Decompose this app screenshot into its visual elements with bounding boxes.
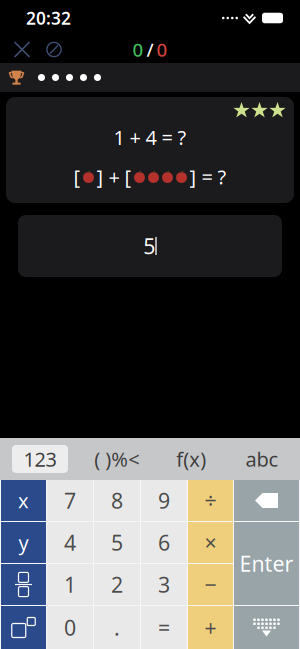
button[interactable]: x — [1, 480, 46, 521]
button[interactable]: ÷ — [188, 480, 233, 521]
staticText: + — [204, 613, 216, 642]
staticText: 1 + 4 = ? — [113, 124, 186, 151]
staticText: / — [146, 37, 153, 62]
button[interactable]: f(x) — [165, 445, 217, 473]
staticText: x — [18, 487, 29, 514]
staticText: 0 — [64, 613, 76, 642]
staticText: − — [204, 570, 216, 599]
button[interactable]: Delete — [234, 480, 299, 521]
staticText: f(x) — [176, 446, 206, 472]
staticText: 0 — [132, 37, 143, 62]
button[interactable]: 5 — [18, 215, 282, 277]
button[interactable]: 123 — [12, 445, 68, 473]
button[interactable]: y — [1, 522, 46, 563]
button[interactable]: × — [188, 522, 233, 563]
button[interactable]: Close — [7, 36, 37, 62]
button[interactable]: ( )%< — [87, 445, 147, 473]
button[interactable]: Enter — [234, 522, 299, 605]
button[interactable]: 6 — [141, 522, 187, 563]
button[interactable]: 9 — [141, 480, 187, 521]
staticText: 2 — [111, 570, 123, 599]
staticText: 5 — [111, 528, 123, 557]
button[interactable]: 2 — [94, 564, 140, 605]
button[interactable]: Hide keyboard — [234, 606, 299, 649]
staticText: 8 — [111, 486, 123, 515]
staticText: = — [158, 613, 170, 642]
button[interactable]: + — [188, 606, 233, 649]
button[interactable]: 0 — [47, 606, 93, 649]
button[interactable]: 3 — [141, 564, 187, 605]
button[interactable]: = — [141, 606, 187, 649]
staticText: × — [204, 528, 216, 557]
staticText: 5 — [143, 232, 155, 260]
staticText: y — [18, 529, 28, 556]
staticText: 4 — [64, 528, 76, 557]
button[interactable]: − — [188, 564, 233, 605]
button[interactable]: 7 — [47, 480, 93, 521]
button[interactable]: Exponent — [1, 606, 46, 649]
button[interactable]: 8 — [94, 480, 140, 521]
staticText: ÷ — [204, 486, 216, 515]
staticText: 6 — [158, 528, 170, 557]
staticText: 0 — [156, 37, 167, 62]
staticText: ( )%< — [94, 446, 139, 472]
staticText: ] = ? — [189, 164, 226, 190]
button[interactable]: abc — [236, 445, 288, 473]
button[interactable]: Fraction — [1, 564, 46, 605]
staticText: 123 — [23, 446, 56, 472]
button[interactable]: 4 — [47, 522, 93, 563]
staticText: Enter — [239, 549, 293, 578]
staticText: 1 — [64, 570, 76, 599]
staticText: 7 — [64, 486, 76, 515]
button[interactable]: 5 — [94, 522, 140, 563]
staticText: 9 — [158, 486, 170, 515]
staticText: abc — [245, 446, 278, 472]
button[interactable]: Skip question — [37, 36, 71, 62]
staticText: . — [114, 613, 120, 642]
staticText: 20:32 — [26, 6, 71, 29]
button[interactable]: . — [94, 606, 140, 649]
staticText: 3 — [158, 570, 170, 599]
staticText: ] + [ — [96, 164, 131, 190]
button[interactable]: 1 — [47, 564, 93, 605]
staticText: [ — [73, 164, 80, 190]
